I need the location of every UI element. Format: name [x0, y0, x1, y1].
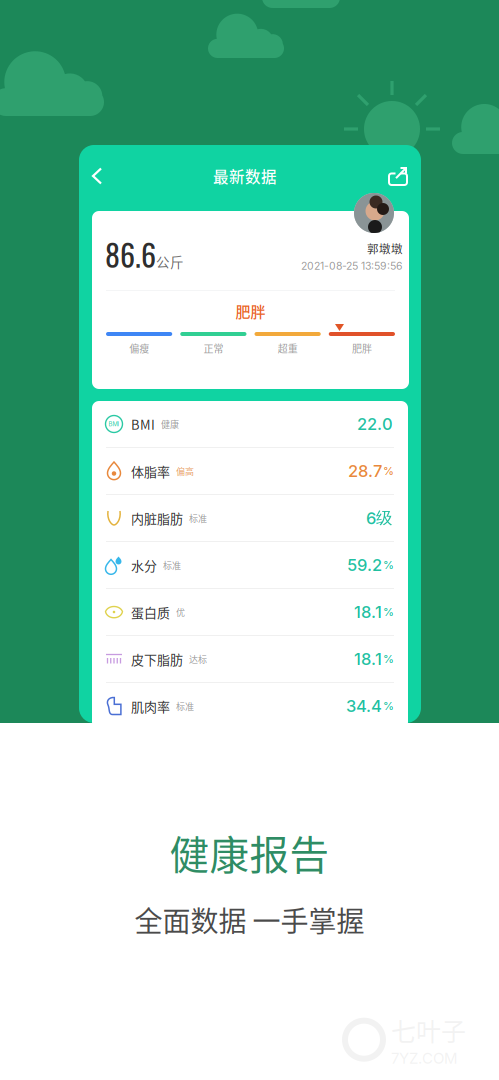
staticText: 偏高 [176, 464, 194, 477]
staticText: 标准 [176, 699, 194, 712]
staticText: 2021-08-25 13:59:56 [301, 260, 403, 272]
button[interactable]: 体脂率 [92, 448, 408, 495]
staticText: 皮下脂肪 [131, 650, 183, 668]
staticText: 34.4 [346, 696, 382, 716]
staticText: BMI [131, 415, 155, 433]
staticText: % [383, 652, 394, 666]
staticText: 86.6 [105, 232, 156, 276]
staticText: % [383, 699, 394, 713]
staticText: 肥胖 [235, 300, 265, 322]
button[interactable]: 蛋白质 [92, 589, 408, 636]
staticText: 正常 [203, 341, 223, 355]
staticText: BMI [108, 420, 119, 428]
staticText: 18.1 [354, 602, 382, 622]
button[interactable]: 内脏脂肪 [92, 495, 408, 542]
staticText: 22.0 [357, 414, 393, 434]
staticText: 7YZ.COM [391, 1049, 458, 1067]
staticText: 七叶子 [391, 1012, 466, 1048]
staticText: 28.7 [348, 461, 382, 481]
staticText: 健康 [161, 417, 179, 430]
staticText: 内脏脂肪 [131, 509, 183, 527]
staticText: % [383, 558, 394, 572]
staticText: 肌肉率 [131, 697, 170, 715]
button[interactable]: Share [373, 157, 421, 195]
staticText: 18.1 [354, 649, 382, 669]
staticText: 蛋白质 [131, 603, 170, 621]
staticText: 公斤 [156, 252, 184, 271]
staticText: 标准 [189, 511, 207, 524]
staticText: 优 [176, 605, 185, 618]
staticText: 体脂率 [131, 462, 170, 480]
staticText: % [383, 464, 394, 478]
staticText: 标准 [163, 558, 181, 571]
staticText: % [383, 605, 394, 619]
button[interactable]: 肌肉率 [92, 683, 408, 729]
button[interactable]: 水分 [92, 542, 408, 589]
staticText: 达标 [189, 652, 207, 665]
staticText: 健康报告 [169, 824, 329, 881]
button[interactable]: BMI [92, 401, 408, 448]
staticText: 59.2 [347, 555, 382, 575]
staticText: 偏瘦 [129, 341, 149, 355]
staticText: 郭墩墩 [367, 240, 403, 257]
staticText: 6级 [366, 508, 393, 528]
staticText: 全面数据 一手掌握 [134, 899, 364, 940]
button[interactable]: Back [79, 157, 117, 194]
staticText: 水分 [131, 556, 157, 574]
button[interactable]: 皮下脂肪 [92, 636, 408, 683]
staticText: 超重 [278, 341, 298, 355]
staticText: 肥胖 [352, 341, 372, 355]
staticText: 最新数据 [213, 165, 277, 187]
